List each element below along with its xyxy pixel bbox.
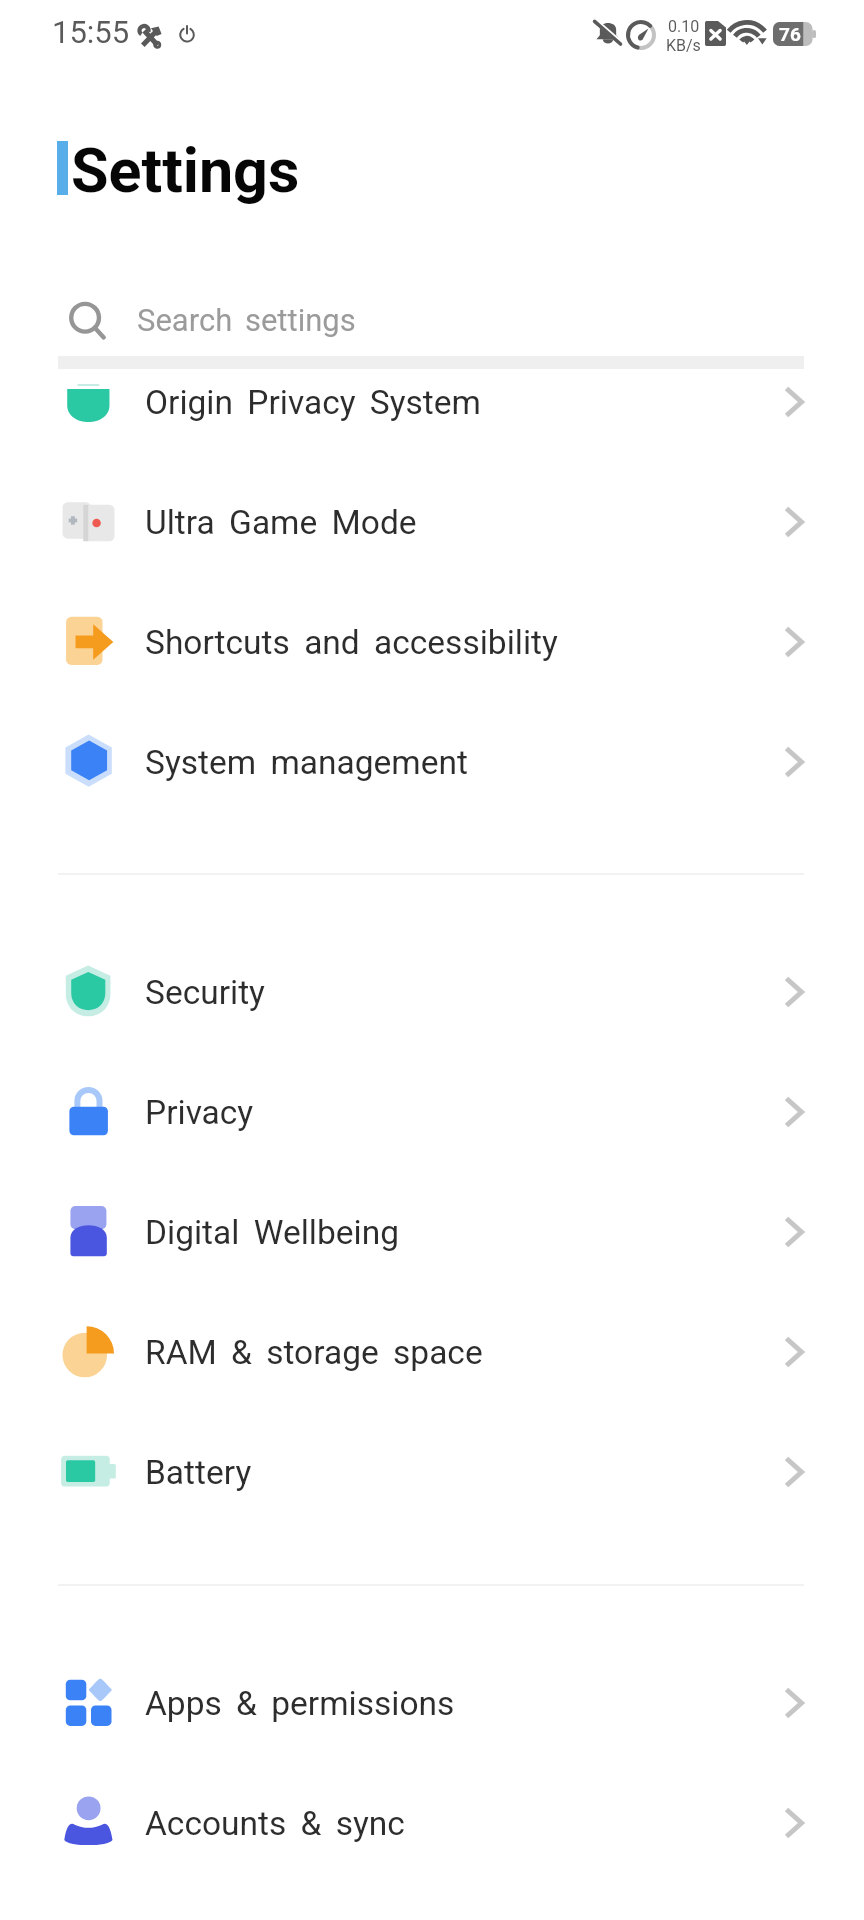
- staticText: KB/s: [666, 36, 701, 55]
- staticText: 15:55: [52, 14, 130, 50]
- staticText: Digital Wellbeing: [145, 1213, 400, 1252]
- button[interactable]: Search: [0, 290, 864, 350]
- button[interactable]: Privacy: [0, 1052, 864, 1172]
- staticText: Security: [145, 973, 265, 1012]
- other: Search: [68, 301, 106, 339]
- staticText: Accounts & sync: [145, 1804, 405, 1843]
- staticText: Shortcuts and accessibility: [145, 623, 558, 662]
- staticText: Apps & permissions: [145, 1684, 455, 1723]
- button[interactable]: RAM & storage space: [0, 1292, 864, 1412]
- button[interactable]: Digital Wellbeing: [0, 1172, 864, 1292]
- button[interactable]: Origin Privacy System: [0, 342, 864, 462]
- staticText: Ultra Game Mode: [145, 503, 417, 542]
- button[interactable]: Accounts & sync: [0, 1763, 864, 1883]
- button[interactable]: Ultra Game Mode: [0, 462, 864, 582]
- button[interactable]: System management: [0, 702, 864, 822]
- button[interactable]: Battery: [0, 1412, 864, 1532]
- staticText: RAM & storage space: [145, 1333, 483, 1372]
- staticText: 0.10: [668, 17, 700, 36]
- staticText: Settings: [71, 135, 300, 206]
- button[interactable]: Apps & permissions: [0, 1643, 864, 1763]
- staticText: System management: [145, 743, 468, 782]
- staticText: 76: [779, 23, 801, 45]
- button[interactable]: Security: [0, 932, 864, 1052]
- staticText: Battery: [145, 1453, 252, 1492]
- staticText: Search settings: [137, 302, 356, 338]
- button[interactable]: Shortcuts and accessibility: [0, 582, 864, 702]
- staticText: Origin Privacy System: [145, 383, 481, 422]
- staticText: Privacy: [145, 1093, 254, 1132]
